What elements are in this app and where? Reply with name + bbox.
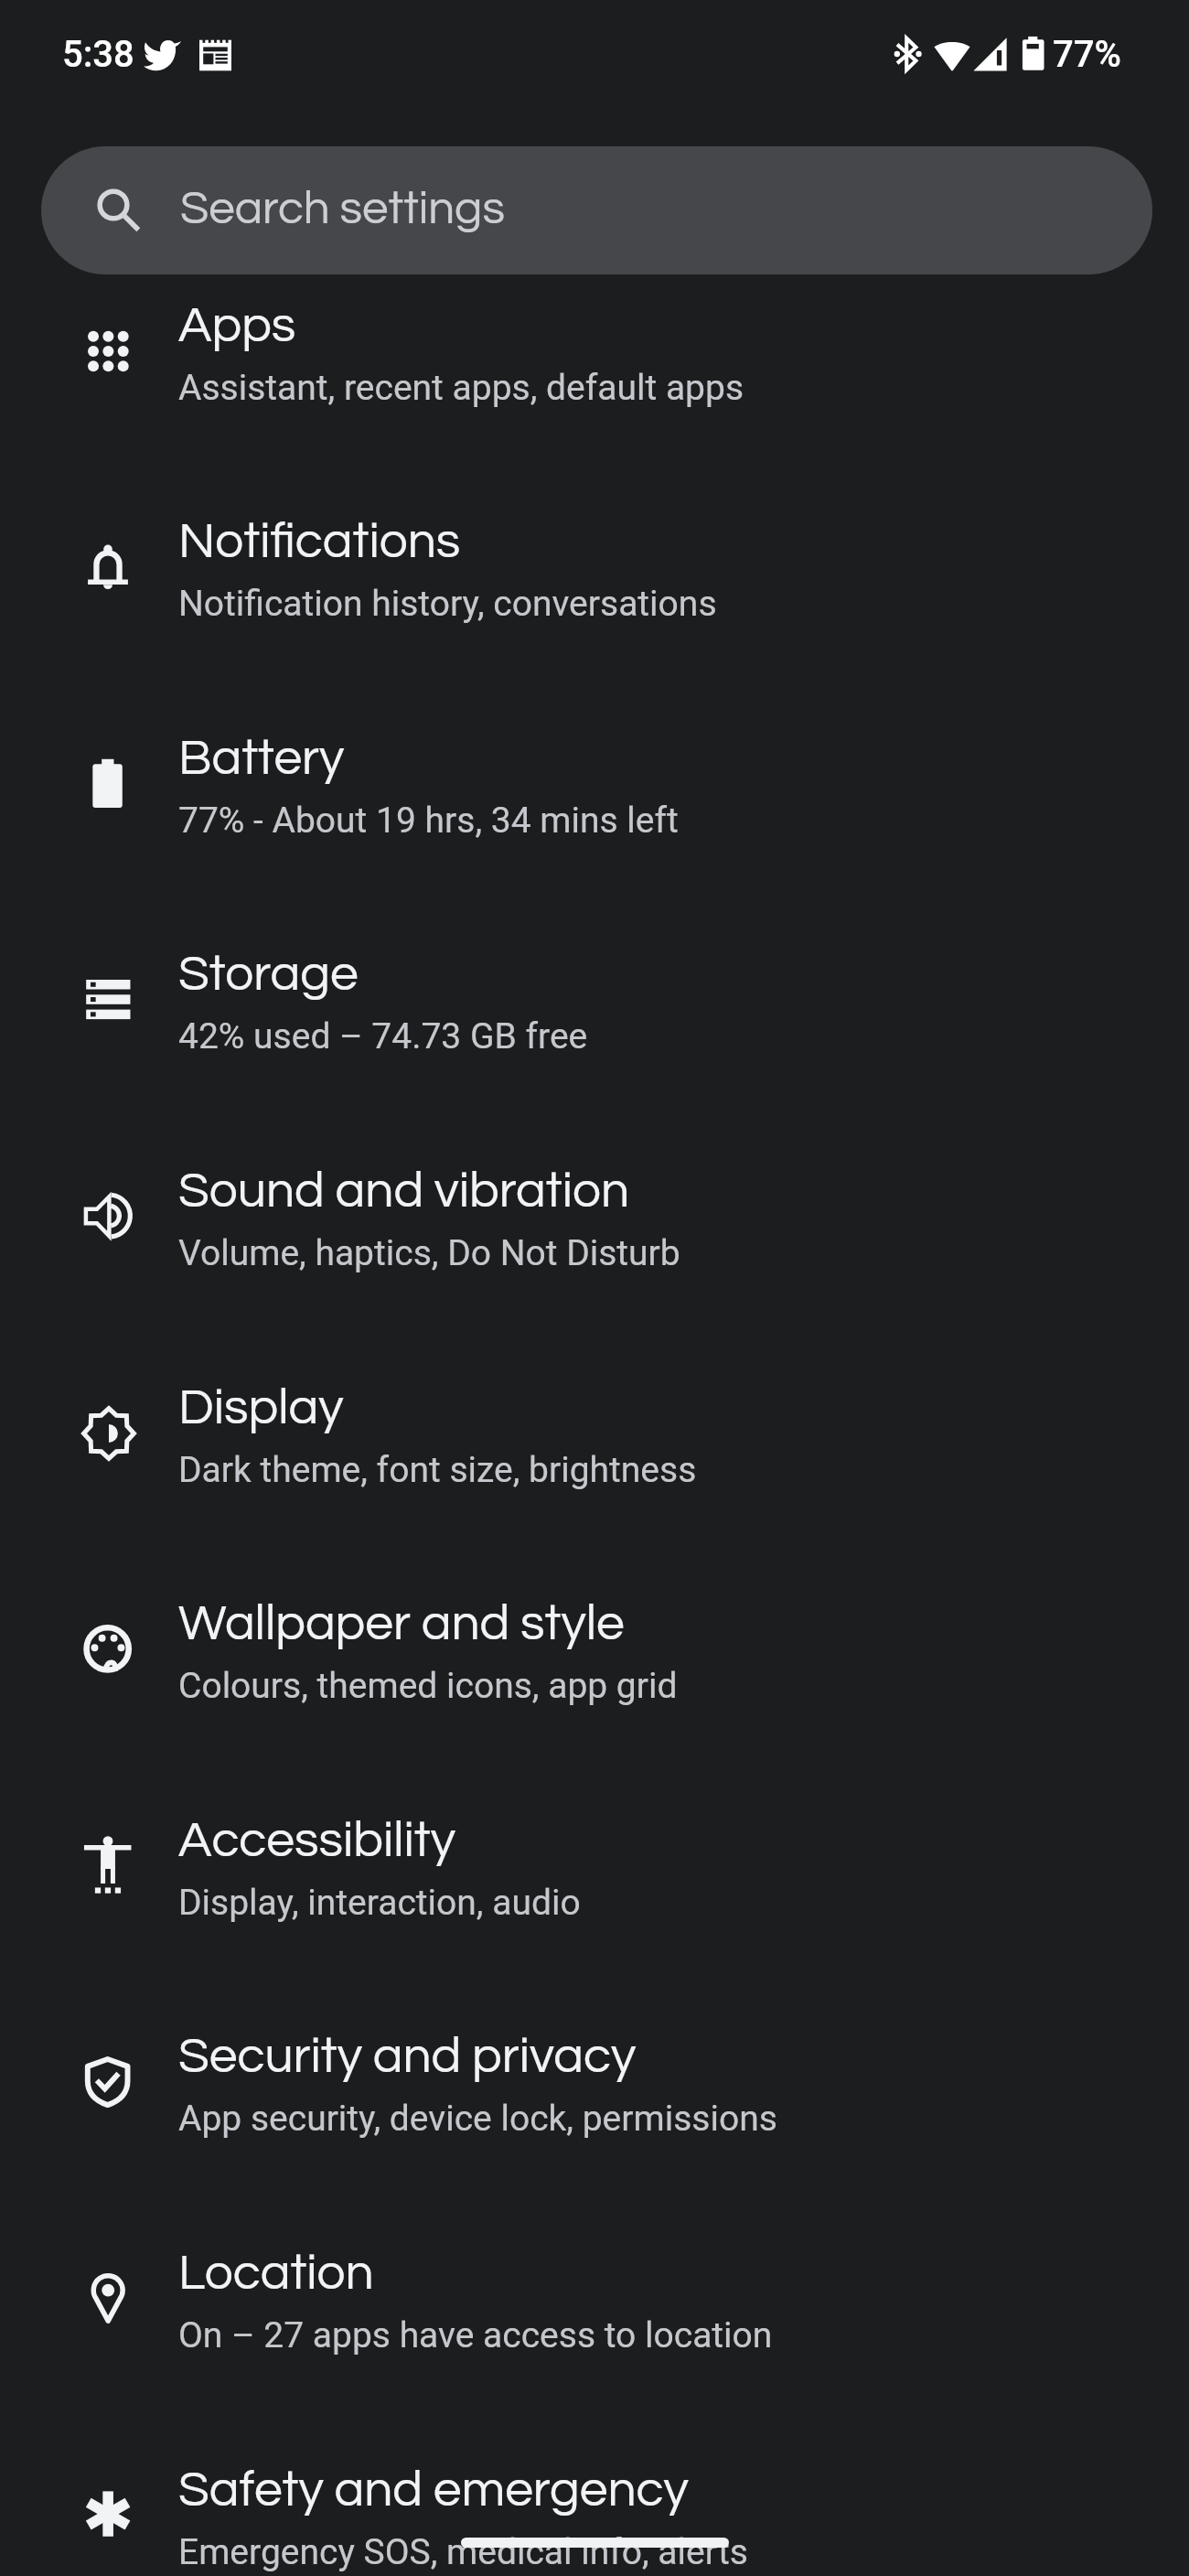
button[interactable]: Sound and vibration xyxy=(0,1136,1189,1353)
button[interactable]: Accessibility xyxy=(0,1786,1189,2002)
button[interactable]: Location xyxy=(0,2218,1189,2435)
button[interactable]: Apps xyxy=(0,271,1189,488)
staticText: Battery xyxy=(178,733,345,785)
staticText: On – 27 apps have access to location xyxy=(178,2314,773,2356)
button[interactable]: Notifications xyxy=(0,487,1189,703)
staticText: Search settings xyxy=(180,185,506,233)
staticText: 5:38 xyxy=(62,33,134,76)
button[interactable]: Storage xyxy=(0,919,1189,1136)
button[interactable]: Display xyxy=(0,1353,1189,1570)
staticText: Sound and vibration xyxy=(178,1165,630,1218)
button[interactable]: Search xyxy=(41,146,1152,274)
other: Search xyxy=(86,177,141,232)
staticText: Safety and emergency xyxy=(178,2464,689,2517)
button[interactable]: Battery xyxy=(0,703,1189,920)
staticText: Volume, haptics, Do Not Disturb xyxy=(178,1232,680,1274)
staticText: 42% used – 74.73 GB free xyxy=(178,1015,588,1057)
staticText: Display xyxy=(178,1382,344,1434)
staticText: App security, device lock, permissions xyxy=(178,2098,777,2140)
staticText: 77% xyxy=(1053,33,1121,76)
staticText: Security and privacy xyxy=(178,2031,637,2083)
staticText: Display, interaction, audio xyxy=(178,1882,581,1924)
staticText: Assistant, recent apps, default apps xyxy=(178,367,744,409)
staticText: Storage xyxy=(178,949,359,1001)
button[interactable]: Security and privacy xyxy=(0,2002,1189,2218)
staticText: Emergency SOS, medical info, alerts xyxy=(178,2531,748,2573)
button[interactable]: Safety and emergency xyxy=(0,2435,1189,2576)
staticText: Colours, themed icons, app grid xyxy=(178,1665,678,1707)
staticText: Wallpaper and style xyxy=(178,1598,625,1650)
staticText: Dark theme, font size, brightness xyxy=(178,1449,697,1491)
staticText: Accessibility xyxy=(178,1815,455,1867)
staticText: Apps xyxy=(178,300,296,352)
staticText: Notification history, conversations xyxy=(178,583,717,625)
staticText: 77% - About 19 hrs, 34 mins left xyxy=(178,800,679,842)
button[interactable]: Wallpaper and style xyxy=(0,1569,1189,1786)
staticText: Location xyxy=(178,2248,374,2300)
staticText: Notifications xyxy=(178,516,461,568)
